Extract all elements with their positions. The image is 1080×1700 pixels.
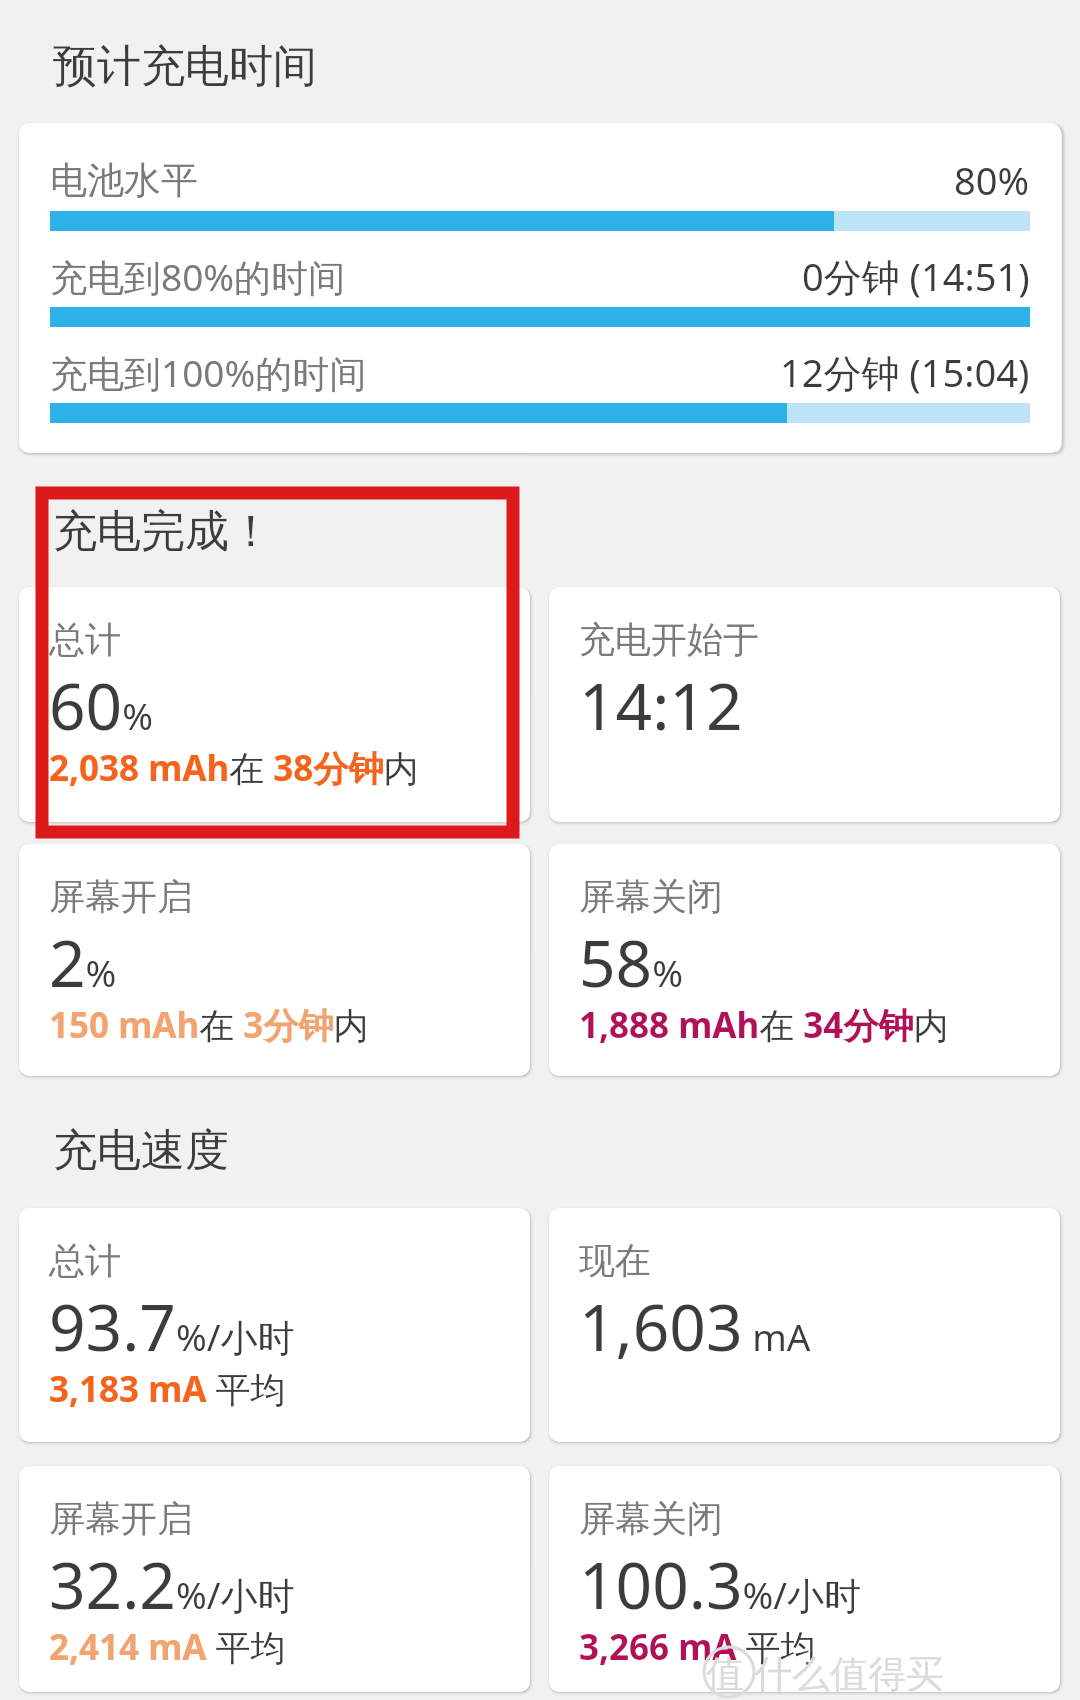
staticText: 充电开始于 [579, 617, 759, 662]
staticText: 值 什么值得买 [706, 1646, 944, 1698]
staticText: 0分钟 (14:51) [802, 250, 1030, 302]
staticText: 充电完成！ [53, 504, 273, 559]
button[interactable]: 总计 [19, 587, 530, 822]
staticText: 3,266 mA 平均 [579, 1623, 816, 1671]
button[interactable]: 屏幕开启 [19, 1466, 530, 1692]
staticText: 80% [954, 154, 1030, 206]
staticText: 总计 [49, 617, 121, 662]
staticText: 充电到80%的时间 [50, 251, 346, 302]
staticText: 58% [579, 919, 683, 1006]
button[interactable]: 屏幕开启 [19, 844, 530, 1076]
staticText: 电池水平 [50, 157, 198, 204]
button[interactable]: 电池水平 [19, 123, 1061, 453]
staticText: 3,183 mA 平均 [49, 1365, 286, 1413]
staticText: 1,603 mA [579, 1283, 811, 1370]
staticText: 12分钟 (15:04) [780, 346, 1030, 398]
button[interactable]: 充电开始于 [549, 587, 1060, 822]
staticText: 充电速度 [53, 1123, 229, 1178]
staticText: 预计充电时间 [53, 39, 317, 94]
staticText: 现在 [579, 1238, 651, 1283]
staticText: 屏幕开启 [49, 874, 193, 919]
staticText: 1,888 mAh在 34分钟内 [579, 1001, 949, 1049]
button[interactable]: 屏幕关闭 [549, 844, 1060, 1076]
staticText: 2% [49, 919, 117, 1006]
staticText: 93.7%/小时 [49, 1283, 295, 1370]
staticText: 总计 [49, 1238, 121, 1283]
staticText: 屏幕关闭 [579, 1496, 723, 1541]
staticText: 充电到100%的时间 [50, 347, 367, 398]
staticText: 2,414 mA 平均 [49, 1623, 286, 1671]
staticText: 60% [49, 662, 153, 749]
staticText: 屏幕开启 [49, 1496, 193, 1541]
button[interactable]: 屏幕关闭 [549, 1466, 1060, 1692]
staticText: 32.2%/小时 [49, 1541, 295, 1628]
staticText: 屏幕关闭 [579, 874, 723, 919]
button[interactable]: 现在 [549, 1208, 1060, 1442]
staticText: 2,038 mAh在 38分钟内 [49, 744, 419, 792]
staticText: 14:12 [579, 662, 743, 749]
button[interactable]: 总计 [19, 1208, 530, 1442]
staticText: 150 mAh在 3分钟内 [49, 1001, 369, 1049]
staticText: 100.3%/小时 [579, 1541, 862, 1628]
